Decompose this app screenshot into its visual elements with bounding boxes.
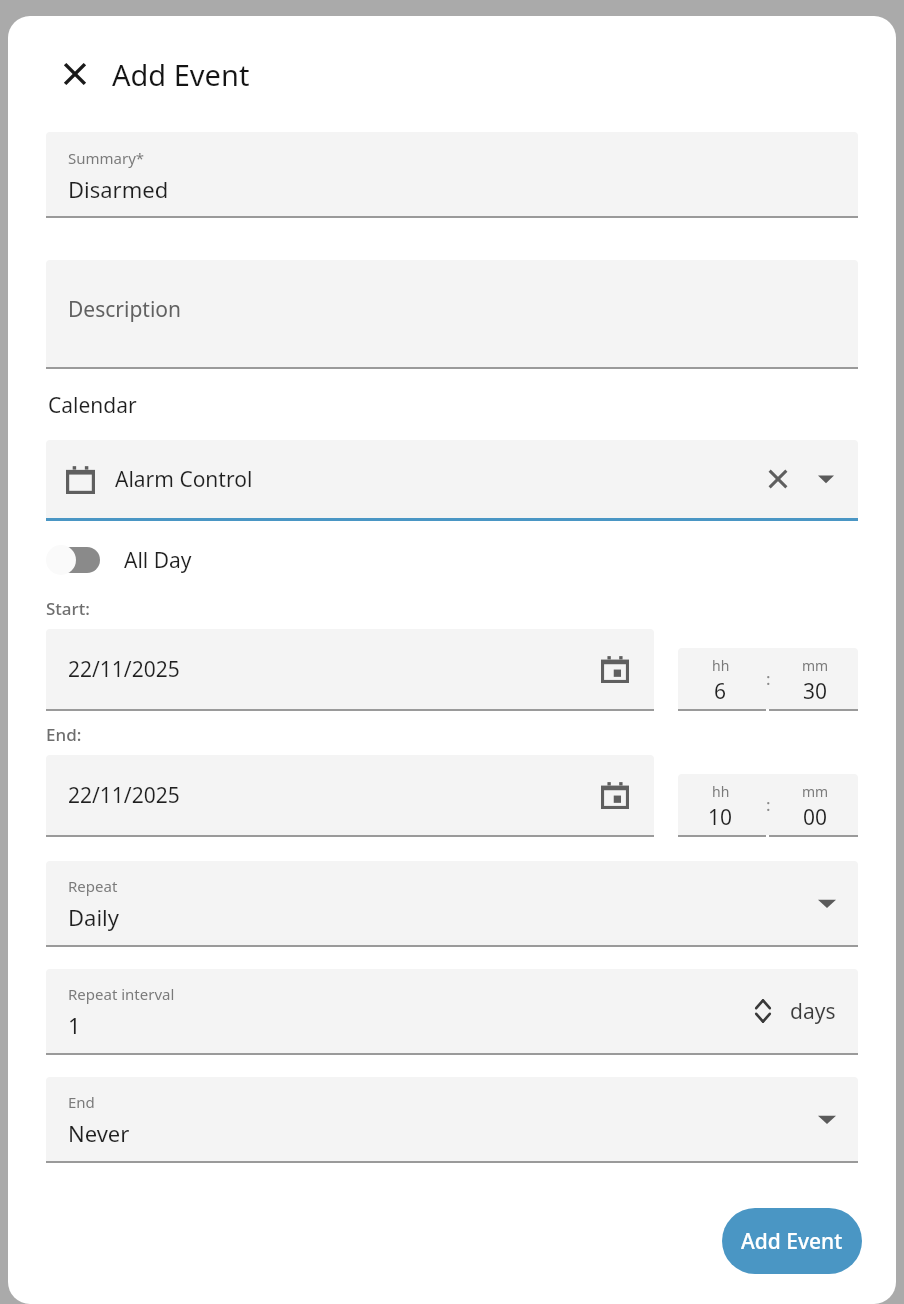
staticText: Add Event	[112, 55, 250, 94]
button[interactable]: hh	[678, 774, 858, 835]
button[interactable]: Description	[46, 260, 858, 367]
button[interactable]: Clear calendar	[762, 463, 794, 495]
staticText: 22/11/2025	[68, 655, 180, 684]
staticText: 6	[714, 677, 727, 706]
staticText: 1	[68, 1010, 81, 1040]
staticText: 00	[803, 803, 828, 832]
staticText: hh	[712, 656, 730, 675]
button[interactable]: Close	[58, 57, 92, 91]
staticText: Start:	[46, 597, 90, 620]
button[interactable]: Alarm Control	[46, 440, 858, 518]
button[interactable]: hh	[678, 648, 858, 709]
button[interactable]: Summary*	[46, 132, 858, 216]
button[interactable]: Adjust repeat interval	[750, 995, 776, 1027]
staticText: Disarmed	[68, 174, 169, 204]
staticText: Repeat	[68, 876, 118, 896]
button[interactable]: Pick start date	[598, 652, 632, 686]
staticText: All Day	[124, 546, 192, 575]
staticText: :	[766, 793, 771, 816]
button[interactable]: Repeat interval	[46, 969, 858, 1053]
staticText: Daily	[68, 902, 119, 932]
button[interactable]: Add Event	[722, 1208, 862, 1274]
staticText: Add Event	[741, 1227, 843, 1256]
button[interactable]: 22/11/2025	[46, 629, 654, 709]
staticText: Alarm Control	[115, 465, 253, 494]
staticText: End	[68, 1092, 95, 1112]
staticText: 22/11/2025	[68, 781, 180, 810]
staticText: Never	[68, 1118, 130, 1148]
button[interactable]: All Day toggle	[46, 543, 104, 577]
staticText: mm	[802, 782, 829, 801]
button[interactable]: Repeat	[46, 861, 858, 945]
button[interactable]: Pick end date	[598, 778, 632, 812]
staticText: :	[766, 667, 771, 690]
staticText: 10	[708, 803, 733, 832]
staticText: hh	[712, 782, 730, 801]
button[interactable]: Choose calendar	[812, 465, 840, 493]
button[interactable]: 22/11/2025	[46, 755, 654, 835]
staticText: 30	[803, 677, 828, 706]
button[interactable]: All Day toggle	[46, 543, 858, 577]
staticText: Calendar	[48, 391, 137, 420]
staticText: Summary*	[68, 148, 145, 168]
staticText: mm	[802, 656, 829, 675]
staticText: Description	[68, 295, 182, 324]
staticText: days	[790, 997, 836, 1026]
staticText: Repeat interval	[68, 984, 175, 1004]
button[interactable]: End	[46, 1077, 858, 1161]
staticText: End:	[46, 723, 82, 746]
